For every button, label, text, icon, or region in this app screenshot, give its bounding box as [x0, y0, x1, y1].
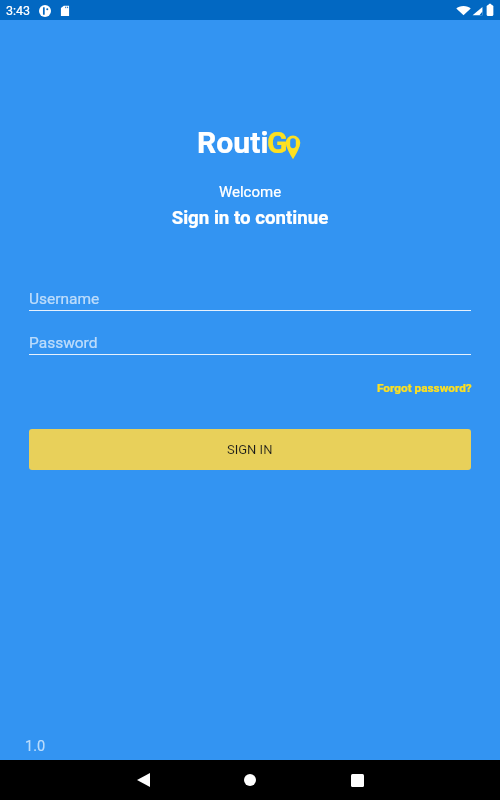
staticText: Username: [29, 290, 100, 308]
staticText: Routi: [197, 125, 269, 160]
staticText: 1.0: [25, 738, 46, 755]
staticText: Password: [29, 334, 98, 352]
button[interactable]: Forgot password?: [367, 375, 500, 398]
button[interactable]: SIGN IN: [29, 429, 471, 470]
button[interactable]: Home: [226, 760, 274, 800]
button[interactable]: Username: [29, 290, 471, 311]
staticText: Sign in to continue: [0, 207, 500, 229]
staticText: Forgot password?: [377, 381, 472, 395]
staticText: SIGN IN: [227, 442, 273, 457]
staticText: 3:43: [6, 3, 31, 18]
button[interactable]: Recent apps: [333, 760, 381, 800]
button[interactable]: Back: [119, 760, 167, 800]
staticText: Welcome: [0, 183, 500, 201]
button[interactable]: Password: [29, 334, 471, 355]
staticText: G: [267, 125, 288, 160]
